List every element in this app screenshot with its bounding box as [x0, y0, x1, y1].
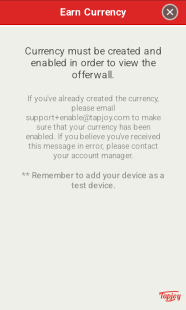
- staticText: Tapjoy: [159, 290, 181, 300]
- staticText: Currency must be created and enabled in …: [24, 45, 161, 81]
- staticText: Earn Currency: [60, 6, 126, 18]
- button[interactable]: Tapjoy: [158, 289, 182, 302]
- button[interactable]: Close: [158, 0, 182, 24]
- staticText: If you've already created the currency, …: [25, 94, 160, 160]
- staticText: ** Remember to add your device as a test…: [21, 170, 164, 190]
